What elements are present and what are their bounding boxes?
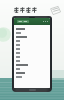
button[interactable] bbox=[16, 39, 48, 43]
button[interactable] bbox=[16, 67, 48, 71]
button[interactable] bbox=[16, 31, 48, 35]
button[interactable]: More options bbox=[43, 21, 48, 22]
button[interactable] bbox=[16, 51, 48, 55]
button[interactable] bbox=[16, 43, 48, 47]
button[interactable]: Search bbox=[17, 20, 29, 23]
button[interactable] bbox=[14, 7, 38, 13]
button[interactable] bbox=[16, 71, 48, 75]
button[interactable] bbox=[16, 27, 48, 31]
button[interactable]: Note bbox=[50, 6, 61, 15]
button[interactable] bbox=[16, 59, 48, 63]
button[interactable] bbox=[16, 63, 48, 67]
button[interactable]: Search bbox=[14, 18, 50, 25]
button[interactable] bbox=[16, 35, 48, 39]
button[interactable] bbox=[16, 55, 48, 59]
button[interactable] bbox=[16, 47, 48, 51]
button[interactable] bbox=[16, 75, 48, 79]
